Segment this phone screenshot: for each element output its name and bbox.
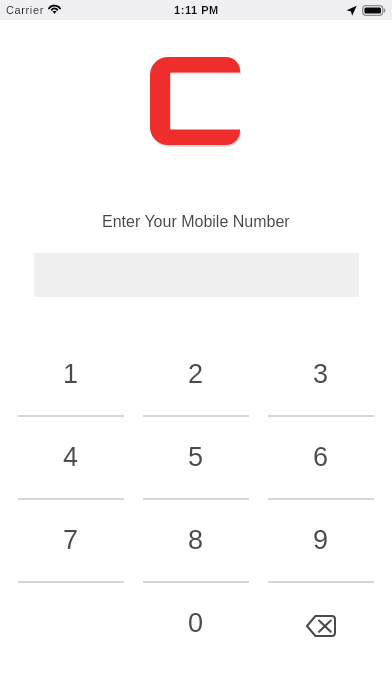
- staticText: Carrier: [6, 4, 44, 16]
- staticText: 1:11 PM: [174, 4, 219, 16]
- staticText: Enter Your Mobile Number: [102, 213, 290, 231]
- button[interactable]: 3: [258, 332, 383, 415]
- other: Battery: [362, 5, 386, 16]
- staticText: 6: [313, 442, 329, 472]
- staticText: 7: [63, 525, 79, 555]
- button[interactable]: 0: [133, 581, 258, 664]
- button[interactable]: 1: [9, 332, 133, 415]
- other: Location: [346, 5, 357, 16]
- staticText: 4: [63, 442, 79, 472]
- button[interactable]: 5: [133, 415, 258, 498]
- staticText: 1: [63, 359, 79, 389]
- button[interactable]: 6: [258, 415, 383, 498]
- button[interactable]: 9: [258, 498, 383, 581]
- button[interactable]: Delete: [258, 581, 383, 664]
- staticText: 5: [188, 442, 204, 472]
- button[interactable]: 7: [9, 498, 133, 581]
- staticText: 3: [313, 359, 329, 389]
- staticText: 2: [188, 359, 204, 389]
- button[interactable]: 4: [9, 415, 133, 498]
- button[interactable]: 2: [133, 332, 258, 415]
- staticText: 0: [188, 608, 204, 638]
- button[interactable]: 8: [133, 498, 258, 581]
- other: Wi-Fi: [48, 0, 61, 20]
- staticText: 9: [313, 525, 329, 555]
- staticText: 8: [188, 525, 204, 555]
